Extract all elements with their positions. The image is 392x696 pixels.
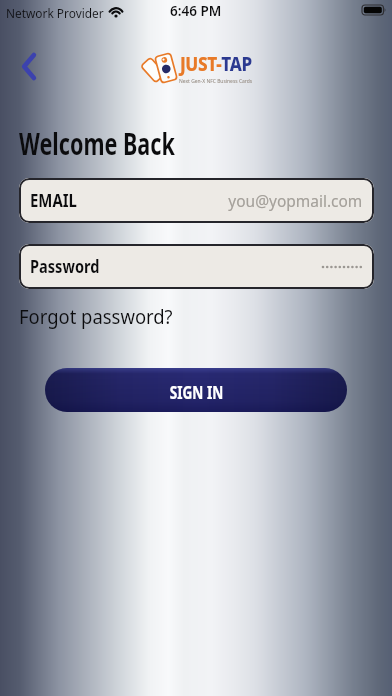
staticText: EMAIL [30, 188, 77, 213]
staticText: SIGN IN [170, 381, 223, 404]
staticText: you@yopmail.com [228, 189, 363, 212]
staticText: Welcome Back [19, 123, 175, 164]
button[interactable]: Password [19, 244, 374, 289]
staticText: 6:46 PM [170, 2, 222, 20]
button[interactable]: EMAIL [19, 178, 374, 223]
staticText: Next Gen-X NFC Business Cards [179, 77, 253, 84]
staticText: Password [30, 254, 100, 279]
button[interactable]: Forgot password? [19, 304, 178, 330]
staticText: Network Provider [6, 5, 104, 22]
button[interactable] [11, 48, 47, 84]
staticText: TAP [221, 51, 252, 77]
button[interactable]: SIGN IN [45, 368, 347, 412]
staticText: JUST- [180, 51, 221, 77]
